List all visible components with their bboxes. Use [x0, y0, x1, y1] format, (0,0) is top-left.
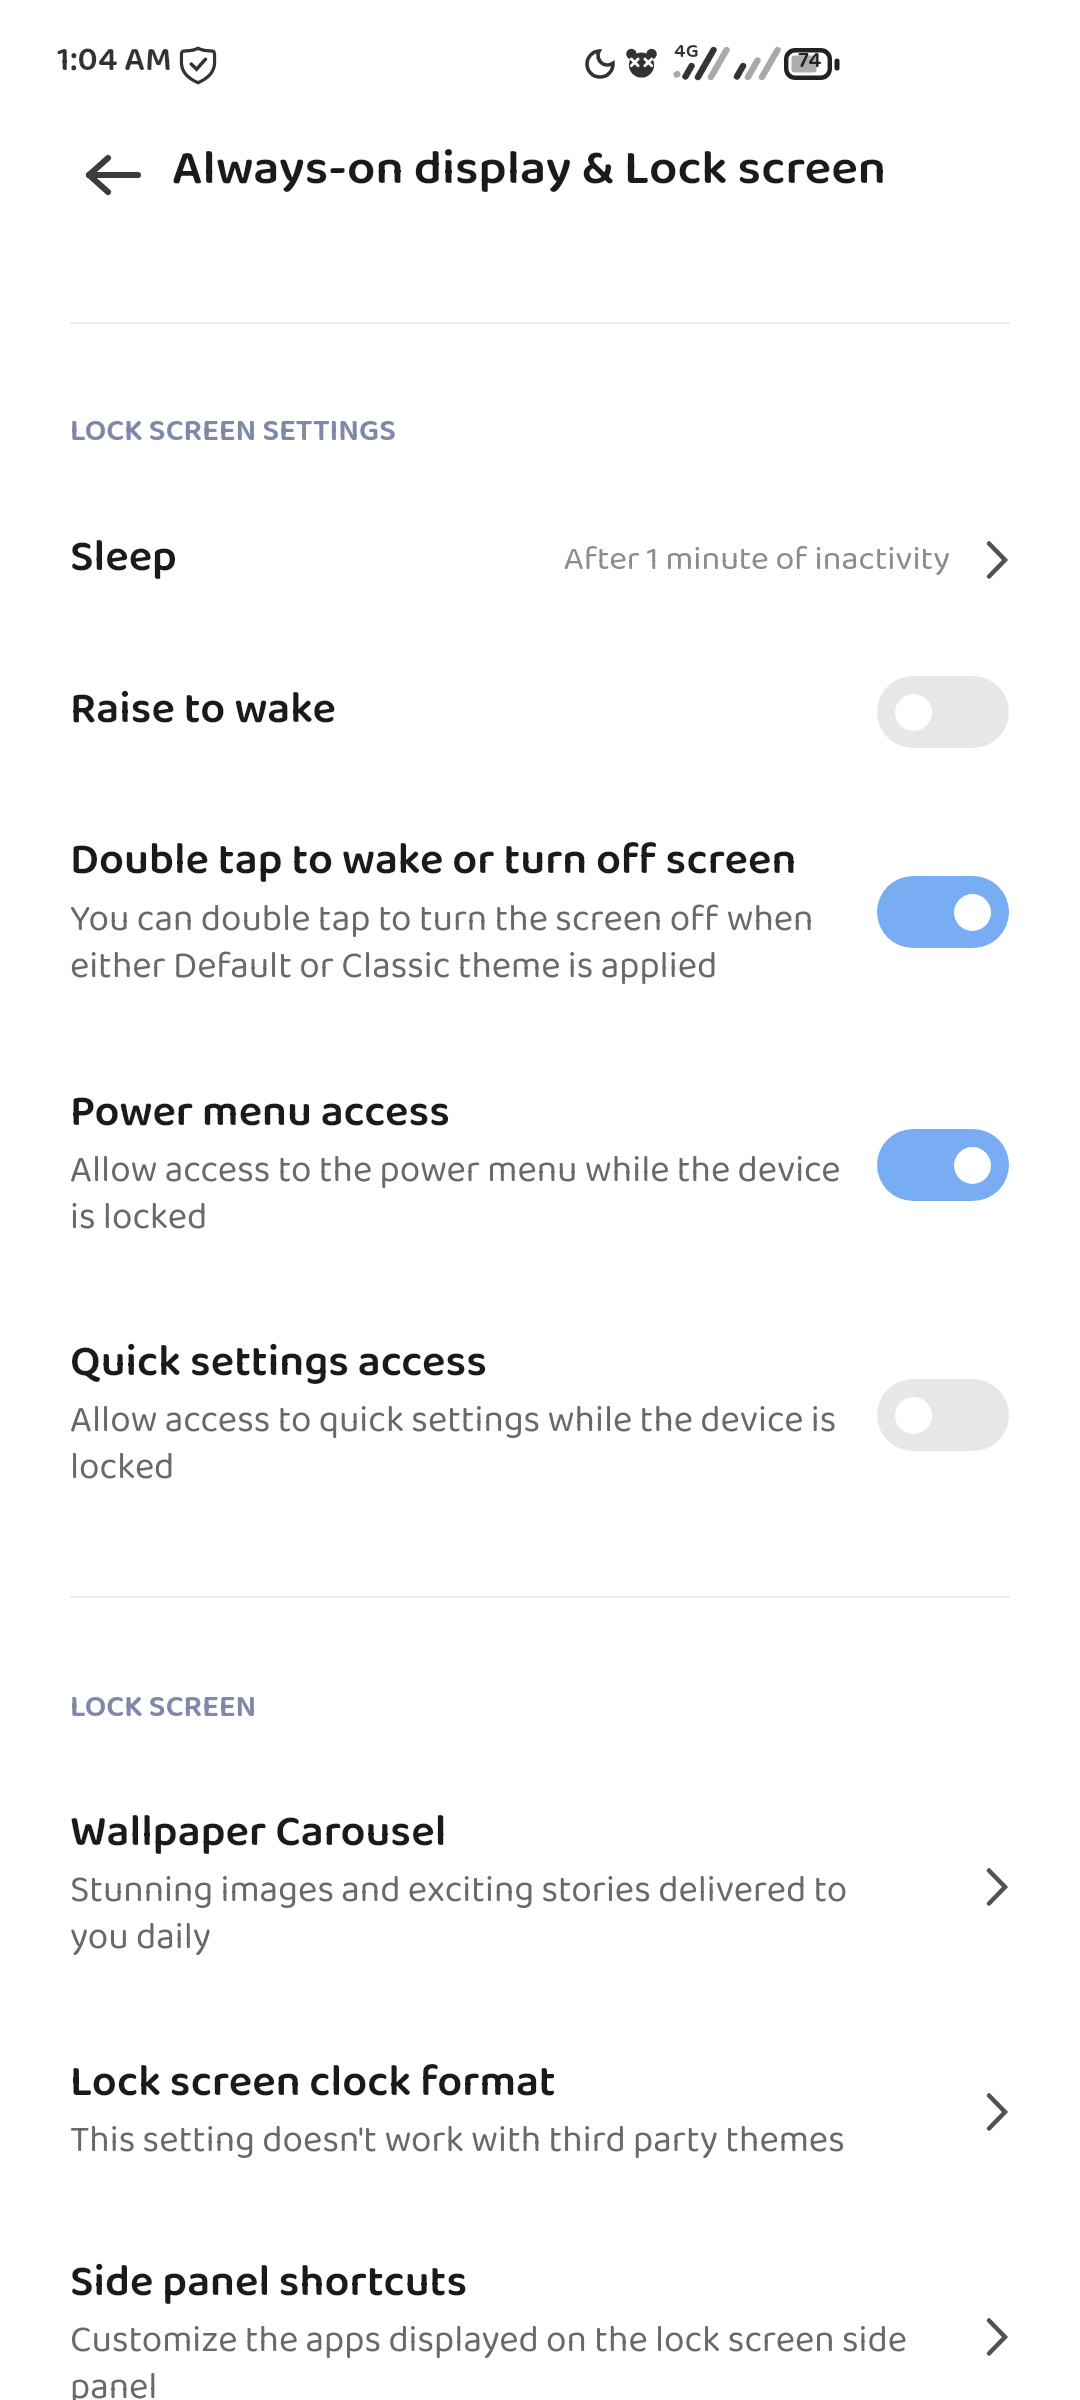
staticText: 4G	[674, 35, 699, 61]
button[interactable]	[877, 676, 1009, 748]
button[interactable]	[0, 2240, 1080, 2400]
staticText: This setting doesn't work with third par…	[70, 2111, 845, 2158]
staticText: Raise to wake	[70, 675, 336, 732]
button[interactable]	[877, 1379, 1009, 1451]
button[interactable]	[0, 2040, 1080, 2190]
button[interactable]	[0, 1790, 1080, 1970]
button[interactable]	[0, 1330, 1080, 1495]
staticText: Side panel shortcuts	[70, 2248, 468, 2305]
staticText: Customize the apps displayed on the lock…	[70, 2311, 907, 2400]
staticText: Allow access to quick settings while the…	[70, 1391, 837, 1485]
staticText: Always-on display & Lock screen	[172, 129, 887, 194]
staticText: 1:04 AM	[57, 33, 172, 77]
button[interactable]	[0, 642, 1080, 782]
staticText: Quick settings access	[70, 1328, 487, 1385]
button[interactable]	[0, 830, 1080, 995]
staticText: Lock screen clock format	[70, 2048, 556, 2105]
staticText: Wallpaper Carousel	[70, 1798, 447, 1855]
button[interactable]	[85, 155, 141, 195]
staticText: LOCK SCREEN	[70, 1683, 257, 1723]
staticText: After 1 minute of inactivity	[563, 532, 950, 586]
staticText: You can double tap to turn the screen of…	[70, 890, 814, 984]
staticText: Power menu access	[70, 1078, 450, 1135]
button[interactable]	[0, 490, 1080, 630]
staticText: Allow access to the power menu while the…	[70, 1141, 841, 1235]
button[interactable]	[0, 1080, 1080, 1245]
staticText: Double tap to wake or turn off screen	[70, 826, 797, 883]
button[interactable]	[877, 876, 1009, 948]
staticText: Stunning images and exciting stories del…	[70, 1861, 848, 1955]
button[interactable]	[877, 1129, 1009, 1201]
staticText: 74	[798, 42, 822, 71]
staticText: Sleep	[70, 523, 177, 580]
staticText: LOCK SCREEN SETTINGS	[70, 407, 396, 447]
